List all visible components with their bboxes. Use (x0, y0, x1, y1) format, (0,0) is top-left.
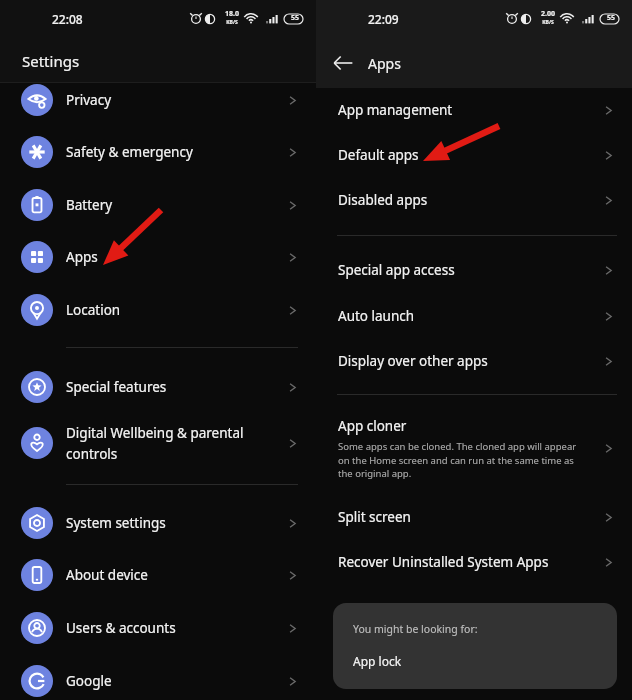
staticText: 55 (291, 13, 300, 23)
button[interactable]: Digital Wellbeing & parental controls (0, 414, 316, 472)
button[interactable]: Google (0, 657, 316, 700)
staticText: 22:09 (368, 11, 399, 27)
button[interactable]: About device (0, 551, 316, 599)
staticText: 22:08 (52, 11, 83, 27)
staticText: App lock (353, 653, 402, 669)
staticText: KB/S (226, 19, 238, 26)
button[interactable]: Location (0, 286, 316, 334)
staticText: Display over other apps (338, 352, 488, 370)
staticText: Some apps can be cloned. The cloned app … (338, 440, 586, 479)
button[interactable]: Display over other apps (316, 339, 632, 383)
staticText: App management (338, 101, 453, 119)
button[interactable]: Special features (0, 363, 316, 411)
staticText: 55 (607, 13, 616, 23)
button[interactable]: Safety & emergency (0, 128, 316, 176)
button[interactable]: App cloner (316, 410, 632, 486)
staticText: Auto launch (338, 307, 415, 325)
staticText: Settings (22, 51, 80, 71)
staticText: Default apps (338, 146, 419, 164)
button[interactable]: Privacy (0, 76, 316, 124)
staticText: 2.00 (541, 9, 555, 19)
button[interactable]: Auto launch (316, 294, 632, 338)
staticText: You might be looking for: (353, 622, 478, 636)
button[interactable]: Split screen (316, 495, 632, 539)
button[interactable]: Back (330, 50, 356, 76)
staticText: Apps (66, 248, 281, 266)
staticText: Battery (66, 196, 281, 214)
staticText: Users & accounts (66, 619, 281, 637)
button[interactable]: Special app access (316, 248, 632, 292)
staticText: Recover Uninstalled System Apps (338, 553, 549, 571)
staticText: Special features (66, 378, 281, 396)
button[interactable]: Default apps (316, 133, 632, 177)
button[interactable]: Users & accounts (0, 604, 316, 652)
button[interactable]: Apps (0, 233, 316, 281)
staticText: Privacy (66, 91, 281, 109)
button[interactable]: System settings (0, 499, 316, 547)
staticText: Location (66, 301, 281, 319)
button[interactable]: You might be looking for: (333, 603, 617, 689)
staticText: KB/S (542, 19, 554, 26)
staticText: System settings (66, 514, 281, 532)
staticText: Apps (368, 54, 401, 73)
staticText: Google (66, 672, 281, 690)
staticText: Special app access (338, 261, 455, 279)
staticText: Split screen (338, 508, 411, 526)
button[interactable]: App management (316, 88, 632, 132)
button[interactable]: Disabled apps (316, 178, 632, 222)
button[interactable]: Recover Uninstalled System Apps (316, 540, 632, 584)
staticText: About device (66, 566, 281, 584)
button[interactable]: Battery (0, 181, 316, 229)
staticText: Disabled apps (338, 191, 428, 209)
staticText: App cloner (338, 417, 407, 435)
staticText: Safety & emergency (66, 143, 281, 161)
staticText: Digital Wellbeing & parental controls (66, 424, 281, 463)
staticText: 18.0 (225, 9, 239, 19)
